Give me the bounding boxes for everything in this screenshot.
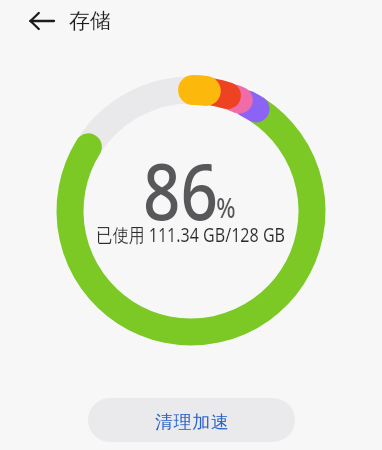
staticText: 存储	[69, 8, 111, 34]
button[interactable]: 清理加速	[88, 398, 295, 442]
staticText: 已使用 111.34 GB/128 GB	[96, 222, 286, 248]
button[interactable]	[24, 3, 60, 39]
staticText: 86	[143, 137, 219, 243]
staticText: %	[216, 189, 236, 226]
staticText: 清理加速	[155, 411, 229, 434]
